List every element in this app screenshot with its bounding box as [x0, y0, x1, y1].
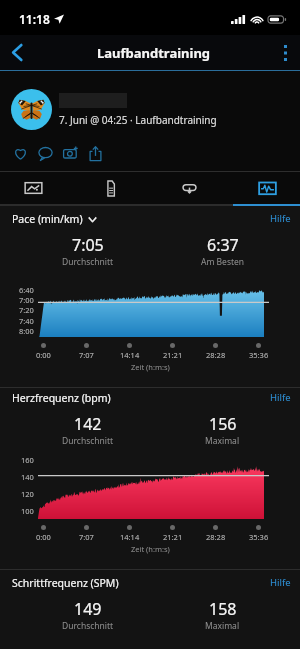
button[interactable]: Zurück: [0, 35, 34, 70]
staticText: 21:21: [163, 532, 183, 542]
staticText: 7:40: [19, 316, 34, 326]
staticText: Durchschnitt: [62, 620, 114, 632]
button[interactable]: Details: [72, 172, 150, 204]
staticText: 8:00: [19, 326, 34, 336]
staticText: 28:28: [206, 532, 226, 542]
button[interactable]: Foto hinzufügen: [58, 136, 83, 171]
button[interactable]: Profilbild: [11, 89, 52, 130]
staticText: Am Besten: [201, 256, 245, 268]
staticText: 100: [21, 506, 34, 516]
staticText: 0:00: [36, 532, 51, 542]
staticText: Hilfe: [270, 576, 291, 589]
button[interactable]: Runden: [150, 172, 228, 204]
staticText: 142: [74, 413, 102, 435]
staticText: 149: [74, 598, 102, 620]
staticText: 35:36: [249, 532, 269, 542]
staticText: Hilfe: [270, 212, 291, 225]
button[interactable]: Hilfe: [268, 209, 293, 228]
staticText: 158: [209, 598, 237, 620]
staticText: 7. Juni @ 04:25 · Laufbandtraining: [59, 113, 217, 127]
staticText: 7:05: [72, 234, 104, 256]
staticText: 7:07: [79, 350, 94, 360]
staticText: Herzfrequenz (bpm): [12, 391, 111, 405]
button[interactable]: Gefällt mir: [8, 136, 33, 171]
button[interactable]: Mehr Optionen: [270, 35, 300, 70]
staticText: 21:21: [163, 350, 183, 360]
staticText: 14:14: [120, 532, 140, 542]
staticText: 160: [21, 455, 34, 465]
staticText: Durchschnitt: [62, 435, 114, 447]
staticText: 120: [21, 489, 34, 499]
staticText: 140: [21, 472, 34, 482]
button[interactable]: Hilfe: [268, 388, 293, 407]
staticText: 7:07: [79, 532, 94, 542]
staticText: Zeit (h:m:s): [131, 362, 170, 372]
staticText: Maximal: [205, 435, 240, 447]
staticText: 14:14: [120, 350, 140, 360]
staticText: 7:00: [19, 295, 34, 305]
staticText: Zeit (h:m:s): [131, 544, 170, 554]
staticText: 7:20: [19, 305, 34, 315]
staticText: 156: [209, 413, 237, 435]
staticText: Maximal: [205, 620, 240, 632]
staticText: Laufbandtraining: [97, 44, 211, 62]
staticText: 6:37: [207, 234, 239, 256]
button[interactable]: Diagramme: [228, 172, 300, 204]
button[interactable]: Karte: [0, 172, 72, 204]
staticText: 35:36: [249, 350, 269, 360]
staticText: Schrittfrequenz (SPM): [12, 576, 119, 590]
staticText: 11:18: [19, 11, 50, 27]
staticText: Durchschnitt: [62, 256, 114, 268]
staticText: 0:00: [36, 350, 51, 360]
button[interactable]: Kommentieren: [33, 136, 58, 171]
staticText: Hilfe: [270, 391, 291, 404]
button[interactable]: Teilen: [83, 136, 108, 171]
button[interactable]: Hilfe: [268, 573, 293, 592]
staticText: 28:28: [206, 350, 226, 360]
staticText: 6:40: [19, 285, 34, 295]
staticText: Pace (min/km): [12, 212, 83, 226]
